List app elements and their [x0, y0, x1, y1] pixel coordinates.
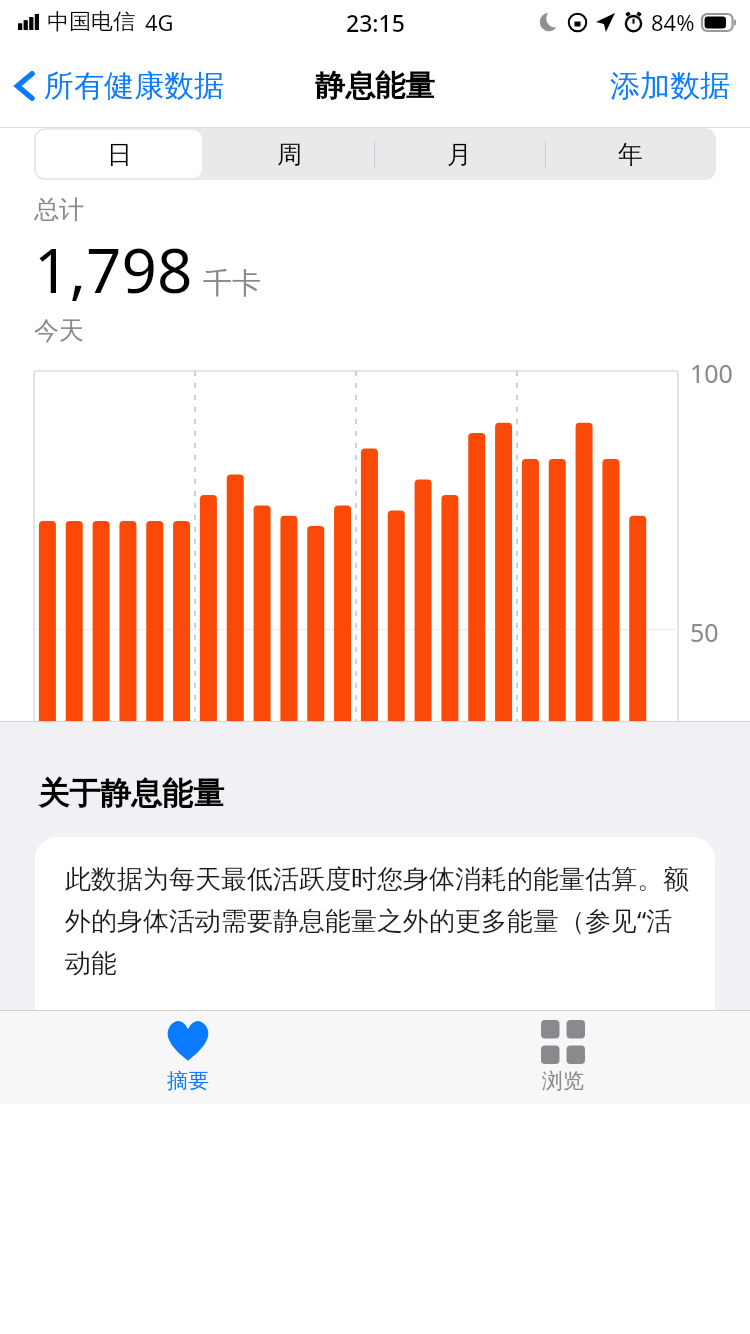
staticText: 0时 — [40, 901, 80, 935]
button[interactable]: 摘要 — [0, 1010, 375, 1104]
button[interactable]: 添加数据 — [610, 67, 730, 105]
button[interactable]: 所有健康数据 — [14, 67, 224, 105]
staticText: 年 — [618, 139, 643, 170]
staticText: 静息能量 — [315, 67, 435, 105]
staticText: 千卡 — [203, 265, 261, 302]
staticText: 此数据为每天最低活跃度时您身体消耗的能量估算。额外的身体活动需要静息能量之外的更… — [65, 863, 693, 979]
staticText: 50 — [690, 615, 719, 649]
staticText: 6时 — [201, 901, 241, 935]
staticText: 摘要 — [167, 1068, 209, 1094]
staticText: 23:15 — [346, 7, 405, 38]
staticText: 日 — [107, 139, 132, 170]
staticText: 浏览 — [542, 1068, 584, 1094]
staticText: 总计 — [34, 194, 84, 225]
staticText: 4G — [145, 7, 174, 37]
button[interactable]: 周 — [204, 128, 374, 180]
staticText: 添加数据 — [610, 67, 730, 105]
staticText: 关于静息能量 — [38, 774, 224, 813]
button[interactable]: 年 — [545, 128, 716, 180]
staticText: 月 — [447, 139, 472, 170]
staticText: 18时 — [523, 901, 577, 935]
button[interactable]: 此数据为每天最低活跃度时您身体消耗的能量估算。额外的身体活动需要静息能量之外的更… — [35, 837, 715, 1010]
button[interactable]: 浏览 — [375, 1010, 750, 1104]
staticText: 中国电信 — [47, 8, 135, 36]
staticText: 所有健康数据 — [44, 67, 224, 105]
staticText: 今天 — [34, 315, 84, 346]
staticText: 1,798 — [34, 227, 193, 311]
button[interactable]: 日 — [34, 128, 204, 180]
staticText: 周 — [277, 139, 302, 170]
button[interactable]: 月 — [374, 128, 545, 180]
staticText: 12时 — [362, 901, 416, 935]
staticText: 84% — [651, 7, 695, 37]
staticText: 100 — [690, 356, 733, 390]
